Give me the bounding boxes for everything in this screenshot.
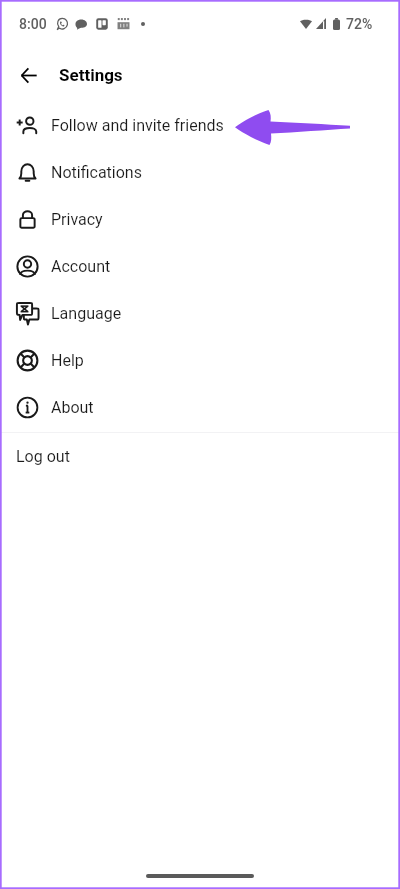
button[interactable]: Privacy — [0, 196, 400, 243]
staticText: 72% — [346, 16, 373, 32]
staticText: 8:00 — [19, 16, 47, 32]
staticText: Log out — [16, 447, 70, 466]
staticText: Follow and invite friends — [51, 116, 224, 135]
button[interactable]: About — [0, 384, 400, 431]
staticText: Language — [51, 304, 122, 323]
button[interactable]: Notifications — [0, 149, 400, 196]
staticText: Account — [51, 257, 111, 276]
staticText: Privacy — [51, 210, 103, 229]
staticText: About — [51, 398, 94, 417]
staticText: Help — [51, 351, 84, 370]
staticText: Settings — [59, 65, 123, 85]
button[interactable]: Help — [0, 337, 400, 384]
button[interactable]: Account — [0, 243, 400, 290]
button[interactable]: Language — [0, 290, 400, 337]
button[interactable]: Back — [13, 59, 45, 91]
staticText: Notifications — [51, 163, 142, 182]
button[interactable]: Follow and invite friends — [0, 102, 400, 149]
button[interactable]: Log out — [0, 433, 400, 480]
